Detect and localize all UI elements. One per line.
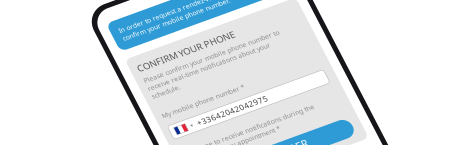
staticText: In order to request a rendez-vous, pleas… <box>106 37 237 55</box>
staticText: Please confirm your mobile phone number … <box>105 94 249 120</box>
staticText: My mobile phone number * <box>105 133 193 142</box>
staticText: CONFIRM YOUR PHONE <box>105 78 208 91</box>
